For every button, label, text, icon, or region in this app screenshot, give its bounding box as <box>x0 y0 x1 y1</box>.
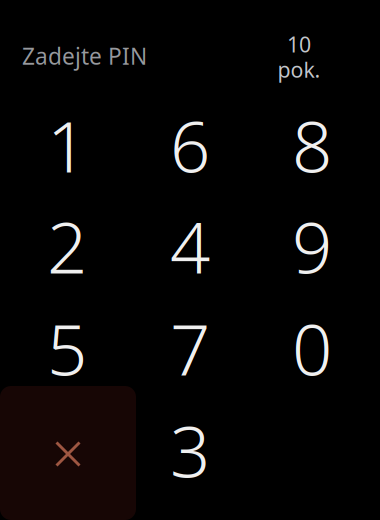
staticText: 3 <box>170 403 210 497</box>
button[interactable]: Delete <box>0 386 136 520</box>
staticText: 6 <box>170 98 210 192</box>
staticText: 1 <box>47 98 87 192</box>
staticText: 5 <box>47 301 87 395</box>
staticText: 7 <box>170 301 210 395</box>
staticText: 0 <box>292 301 332 395</box>
staticText: 2 <box>47 199 87 293</box>
button[interactable]: 7 <box>126 297 253 398</box>
staticText: 4 <box>170 199 210 293</box>
staticText: Zadejte PIN <box>22 41 147 71</box>
button[interactable]: 4 <box>126 195 253 296</box>
button[interactable]: 2 <box>3 195 130 296</box>
button[interactable]: 8 <box>248 94 375 195</box>
button[interactable]: 1 <box>3 94 130 195</box>
button[interactable]: 6 <box>126 94 253 195</box>
button[interactable]: 9 <box>248 195 375 296</box>
staticText: 9 <box>292 199 332 293</box>
button[interactable]: 5 <box>3 297 130 398</box>
staticText: pok. <box>277 55 320 84</box>
staticText: 10 <box>287 30 311 58</box>
button[interactable]: 0 <box>248 297 375 398</box>
staticText: 8 <box>292 98 332 192</box>
button[interactable]: 3 <box>126 399 253 500</box>
